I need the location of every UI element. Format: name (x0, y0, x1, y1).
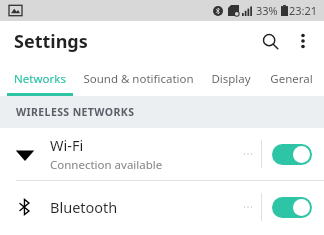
staticText: Settings (14, 29, 88, 54)
button[interactable]: More options (288, 26, 318, 56)
button[interactable]: Sound & notification (74, 61, 202, 96)
staticText: Connection available (50, 157, 163, 173)
staticText: Wi-Fi (50, 135, 84, 155)
button[interactable]: Bluetooth (0, 181, 324, 233)
staticText: 23:21 (289, 3, 318, 18)
staticText: Bluetooth (50, 197, 118, 217)
button[interactable]: Wi-Fi (0, 128, 324, 180)
button[interactable]: Networks (6, 61, 74, 96)
button[interactable]: Search (252, 23, 288, 59)
staticText: Sound & notification (83, 71, 194, 87)
staticText: Networks (14, 71, 66, 87)
staticText: WIRELESS NETWORKS (16, 105, 135, 119)
staticText: General (270, 71, 313, 87)
button[interactable]: General (260, 61, 322, 96)
button[interactable]: Display (202, 61, 260, 96)
staticText: Display (211, 71, 251, 87)
button[interactable]: Toggle (272, 144, 312, 165)
button[interactable]: Toggle (272, 197, 312, 218)
staticText: 33% (256, 3, 278, 18)
